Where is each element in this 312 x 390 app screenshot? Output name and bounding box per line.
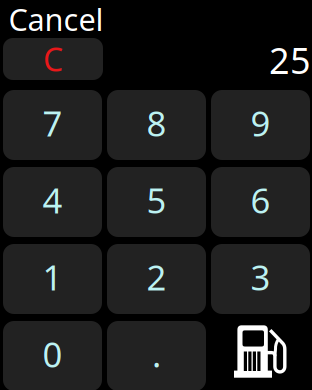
staticText: 5	[146, 177, 166, 223]
button[interactable]: Submit	[233, 324, 287, 380]
button[interactable]: 0	[3, 321, 102, 390]
staticText: 6	[250, 177, 270, 223]
button[interactable]: 3	[211, 244, 310, 314]
button[interactable]: 6	[211, 167, 310, 237]
button[interactable]: 1	[3, 244, 102, 314]
staticText: 4	[42, 177, 62, 223]
button[interactable]: Cancel	[8, 0, 103, 39]
button[interactable]: C	[3, 38, 103, 80]
button[interactable]: 8	[107, 90, 206, 160]
button[interactable]: 2	[107, 244, 206, 314]
staticText: 7	[42, 100, 62, 146]
button[interactable]: 5	[107, 167, 206, 237]
staticText: 2	[146, 254, 166, 300]
staticText: 8	[146, 100, 166, 146]
staticText: 25	[269, 36, 311, 84]
button[interactable]: 9	[211, 90, 310, 160]
staticText: 0	[42, 331, 62, 377]
staticText: 9	[250, 100, 270, 146]
staticText: 1	[42, 254, 62, 300]
button[interactable]: .	[107, 321, 206, 390]
staticText: C	[43, 38, 63, 80]
button[interactable]: 4	[3, 167, 102, 237]
staticText: 3	[250, 254, 270, 300]
button[interactable]: 7	[3, 90, 102, 160]
staticText: .	[152, 331, 161, 377]
staticText: Cancel	[8, 0, 103, 39]
